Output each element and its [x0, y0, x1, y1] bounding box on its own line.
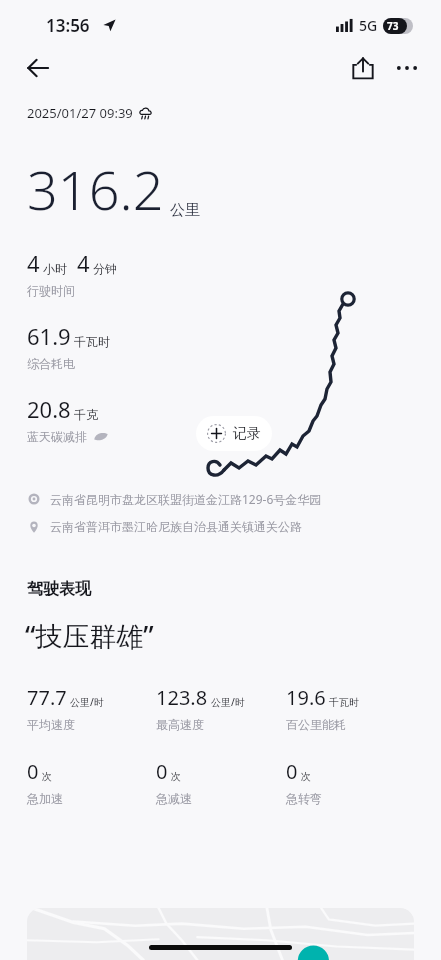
staticText: 公里/时: [211, 695, 245, 709]
staticText: 急减速: [156, 791, 192, 806]
staticText: 记录: [233, 425, 261, 443]
staticText: 急加速: [27, 791, 63, 806]
staticText: 次: [301, 770, 311, 783]
staticText: 百公里能耗: [286, 717, 346, 732]
staticText: 云南省普洱市墨江哈尼族自治县通关镇通关公路: [50, 519, 302, 534]
staticText: 4: [77, 248, 90, 278]
staticText: 千克: [74, 407, 98, 422]
staticText: 123.8: [156, 684, 208, 711]
button[interactable]: 记录: [196, 416, 272, 451]
button[interactable]: [27, 908, 414, 960]
staticText: 蓝天碳减排: [27, 429, 87, 444]
button[interactable]: 云南省昆明市盘龙区联盟街道金江路129-6号金华园: [28, 491, 421, 507]
staticText: 0: [156, 758, 168, 785]
staticText: 云南省昆明市盘龙区联盟街道金江路129-6号金华园: [50, 491, 322, 507]
staticText: 0: [286, 758, 298, 785]
staticText: 316.2: [27, 152, 164, 226]
staticText: 次: [171, 770, 181, 783]
staticText: 综合耗电: [27, 356, 75, 371]
staticText: 73: [387, 19, 399, 33]
staticText: 公里: [170, 201, 200, 220]
staticText: 61.9: [27, 321, 71, 351]
staticText: 13:56: [46, 14, 90, 37]
staticText: 20.8: [27, 394, 71, 424]
button[interactable]: Back: [16, 46, 60, 90]
staticText: 平均速度: [27, 717, 75, 732]
staticText: 驾驶表现: [27, 579, 91, 599]
staticText: 千瓦时: [329, 696, 359, 709]
staticText: 急转弯: [286, 791, 322, 806]
staticText: 次: [42, 770, 52, 783]
staticText: 小时: [43, 261, 67, 276]
staticText: 千瓦时: [74, 334, 110, 349]
staticText: 5G: [359, 16, 378, 35]
staticText: 2025/01/27 09:39: [27, 104, 133, 122]
button[interactable]: More options: [385, 46, 429, 90]
button[interactable]: Share: [341, 46, 385, 90]
staticText: “技压群雄”: [25, 617, 154, 654]
staticText: 行驶时间: [27, 283, 75, 298]
staticText: 0: [27, 758, 39, 785]
staticText: 19.6: [286, 684, 326, 711]
staticText: 公里/时: [70, 695, 104, 709]
staticText: 最高速度: [156, 717, 204, 732]
staticText: 4: [27, 248, 40, 278]
staticText: 77.7: [27, 684, 67, 711]
button[interactable]: 云南省普洱市墨江哈尼族自治县通关镇通关公路: [28, 519, 421, 534]
staticText: 分钟: [93, 261, 117, 276]
